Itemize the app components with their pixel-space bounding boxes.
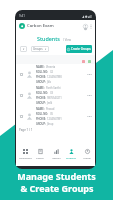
button[interactable]: Groups — [31, 46, 49, 52]
staticText: Parth Sarthi — [46, 86, 61, 90]
staticText: 32 — [50, 70, 53, 74]
button[interactable]: NAME: — [20, 64, 92, 85]
button[interactable]: Students — [64, 149, 78, 159]
staticText: ROLL NO: — [36, 91, 49, 95]
button[interactable]: Create Groups — [66, 45, 92, 53]
staticText: Results — [52, 156, 61, 159]
staticText: Jkrup — [47, 122, 54, 126]
staticText: Carbon Exam — [27, 23, 54, 29]
staticText: Vineeta — [46, 65, 56, 69]
button[interactable]: Exams — [33, 149, 47, 159]
staticText: NAME: — [36, 86, 45, 90]
staticText: PHONE: — [36, 75, 46, 79]
staticText: ▾ — [45, 48, 47, 51]
button[interactable]: Account — [83, 24, 88, 29]
staticText: Groups — [33, 47, 43, 51]
staticText: NAME: — [36, 65, 45, 69]
staticText: Jmlk — [47, 101, 53, 105]
staticText: Students — [37, 35, 60, 42]
button[interactable]: More — [87, 73, 92, 76]
staticText: Profile — [83, 156, 91, 159]
staticText: GROUP: — [36, 80, 46, 84]
staticText: Jkls — [47, 80, 52, 84]
staticText: PHONE: — [36, 96, 46, 100]
staticText: Create Groups — [71, 47, 91, 51]
staticText: 35 — [50, 112, 53, 116]
button[interactable]: More — [87, 115, 92, 118]
staticText: GROUP: — [36, 101, 46, 105]
button[interactable]: NAME: — [20, 106, 92, 127]
staticText: & Create Groups — [20, 182, 94, 194]
staticText: / View — [63, 38, 71, 42]
staticText: Page 1 / 1 — [19, 128, 33, 132]
staticText: 9876543211 — [47, 96, 62, 100]
button[interactable]: Filter — [20, 46, 27, 52]
staticText: ROLL NO: — [36, 112, 49, 116]
staticText: GROUP: — [36, 122, 46, 126]
staticText: Exams — [36, 156, 44, 159]
button[interactable]: Delete — [82, 60, 85, 63]
staticText: NAME: — [36, 107, 45, 111]
button[interactable]: Carbon Exam logo — [19, 23, 25, 29]
button[interactable]: More options — [90, 24, 92, 29]
staticText: Prasad — [46, 107, 55, 111]
button[interactable]: Results — [49, 149, 63, 159]
button[interactable]: More — [87, 94, 92, 97]
button[interactable]: Dashboard — [18, 149, 32, 159]
staticText: 9:41 — [19, 14, 25, 18]
staticText: 1234567890 — [47, 75, 62, 79]
button[interactable]: Export — [88, 60, 91, 63]
staticText: PHONE: — [36, 117, 46, 121]
button[interactable]: NAME: — [20, 85, 92, 106]
staticText: 33 — [50, 91, 53, 95]
button[interactable]: Profile — [80, 149, 94, 159]
staticText: 1234567891 — [47, 117, 62, 121]
staticText: ROLL NO: — [36, 70, 49, 74]
staticText: Manage Students — [17, 170, 96, 182]
staticText: Dashboard — [19, 156, 32, 159]
staticText: Students — [66, 156, 76, 159]
staticText: ▾ — [23, 48, 25, 51]
